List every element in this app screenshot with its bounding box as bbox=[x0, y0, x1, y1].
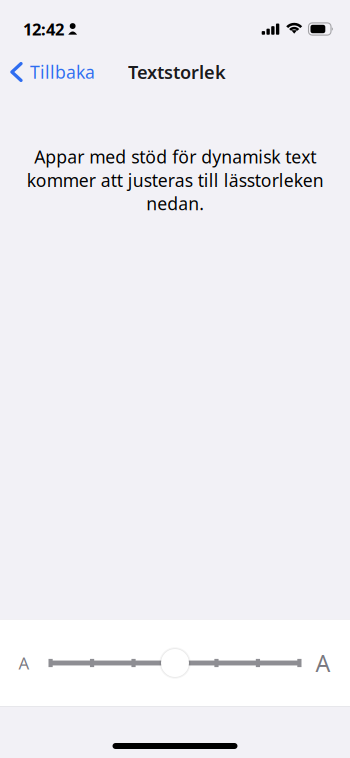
staticText: 12:42 bbox=[23, 18, 64, 40]
staticText: A bbox=[315, 648, 330, 678]
staticText: A bbox=[18, 652, 29, 674]
staticText: Textstorlek bbox=[128, 60, 226, 84]
button[interactable]: Tillbaka bbox=[0, 50, 105, 94]
staticText: Appar med stöd för dynamisk text kommer … bbox=[26, 145, 323, 215]
staticText: Tillbaka bbox=[30, 60, 95, 84]
